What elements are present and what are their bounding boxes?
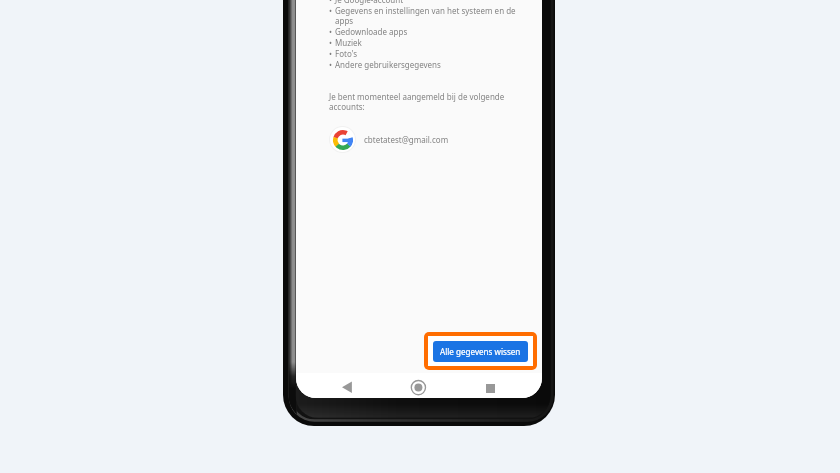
staticText: • <box>329 0 333 5</box>
staticText: Gedownloade apps <box>335 26 408 37</box>
staticText: • <box>329 48 333 59</box>
staticText: Foto's <box>335 48 358 59</box>
staticText: • <box>329 26 333 37</box>
staticText: cbtetatest@gmail.com <box>364 134 449 145</box>
staticText: • <box>329 59 333 70</box>
staticText: • <box>329 5 333 16</box>
staticText: Alle gegevens wissen <box>440 346 521 357</box>
staticText: • <box>329 37 333 48</box>
button[interactable]: Back <box>337 379 357 396</box>
button[interactable]: Alle gegevens wissen <box>433 341 528 362</box>
staticText: Andere gebruikersgegevens <box>335 59 441 70</box>
button[interactable]: Recents <box>482 379 502 397</box>
staticText: Je bent momenteel aangemeld bij de volge… <box>329 91 526 112</box>
staticText: Je Google-account <box>335 0 404 5</box>
staticText: Gegevens en instellingen van het systeem… <box>335 5 526 26</box>
staticText: Muziek <box>335 37 362 48</box>
button[interactable]: cbtetatest@gmail.com <box>329 126 526 153</box>
button[interactable]: Home <box>408 378 429 398</box>
